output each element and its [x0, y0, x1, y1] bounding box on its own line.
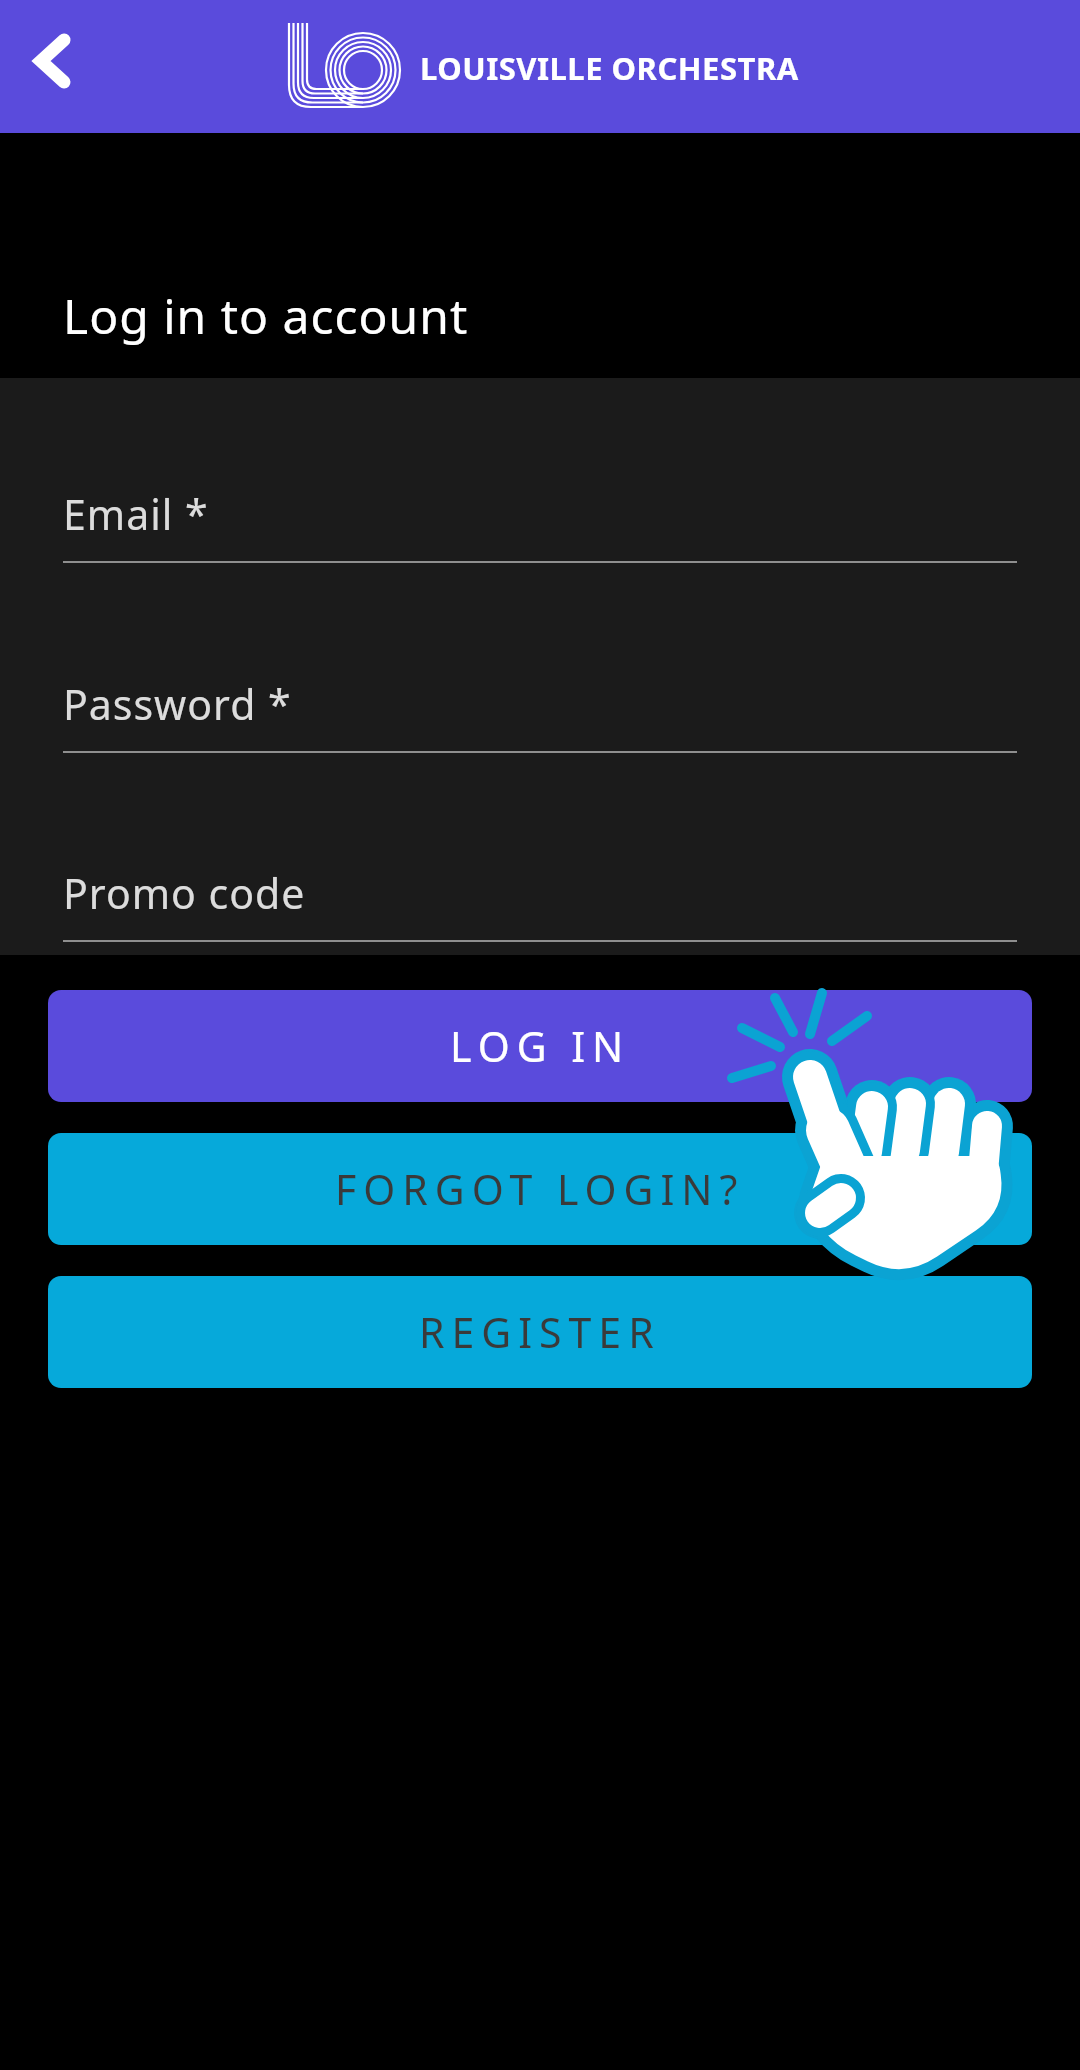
button[interactable]: REGISTER	[48, 1276, 1032, 1388]
staticText: Password *	[63, 676, 292, 732]
button[interactable]: FORGOT LOGIN?	[48, 1133, 1032, 1245]
staticText: Email *	[63, 486, 209, 542]
staticText: LOG IN	[450, 1018, 631, 1074]
staticText: LOUISVILLE ORCHESTRA	[420, 47, 799, 89]
button[interactable]: Email *	[0, 486, 1080, 566]
button[interactable]: Promo code	[0, 865, 1080, 945]
staticText: FORGOT LOGIN?	[335, 1161, 745, 1217]
staticText: Promo code	[63, 865, 306, 921]
staticText: Log in to account	[63, 283, 469, 348]
button[interactable]: Password *	[0, 676, 1080, 756]
staticText: REGISTER	[419, 1304, 661, 1360]
button[interactable]: LOG IN	[48, 990, 1032, 1102]
button[interactable]	[19, 28, 89, 98]
